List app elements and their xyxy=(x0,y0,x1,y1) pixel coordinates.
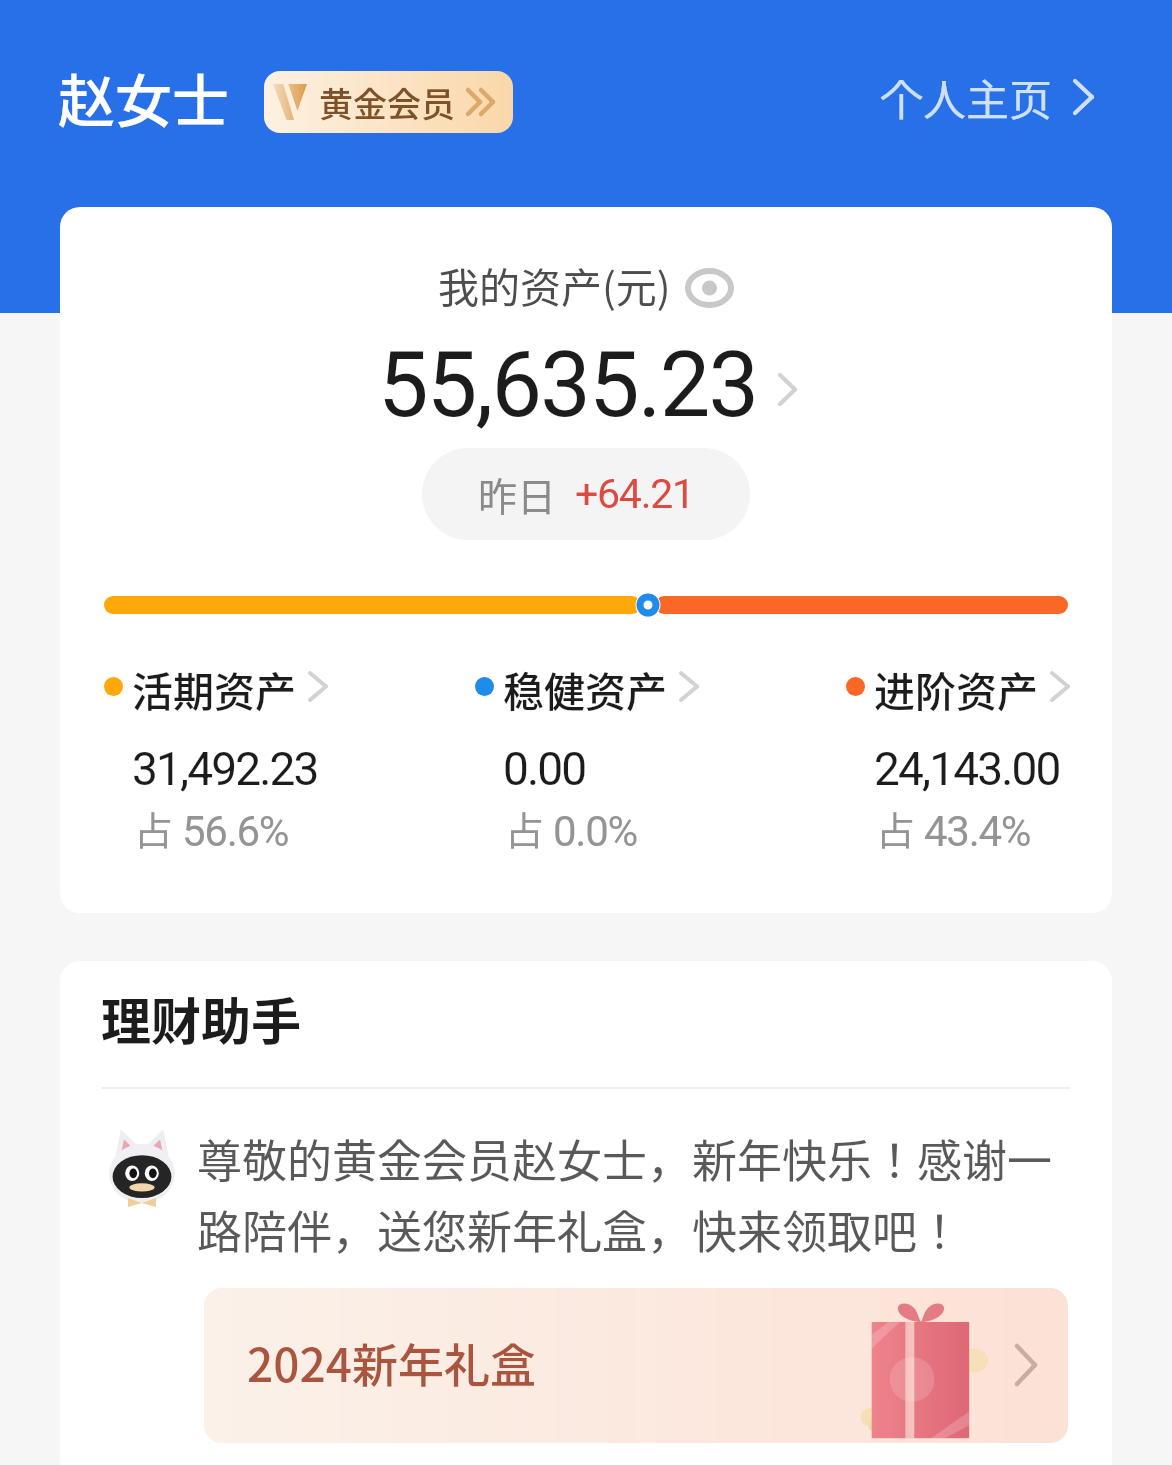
button[interactable]: 个人主页 xyxy=(880,66,1092,128)
staticText: 个人主页 xyxy=(880,66,1052,128)
staticText: 0.0% xyxy=(553,807,638,856)
staticText: 31,492.23 xyxy=(132,742,318,796)
staticText: +64.21 xyxy=(575,470,694,518)
staticText: 24,143.00 xyxy=(874,742,1060,796)
staticText: 进阶资产 xyxy=(874,659,1038,718)
staticText: 占 xyxy=(505,800,545,856)
staticText: 56.6% xyxy=(182,807,289,856)
staticText: 0.00 xyxy=(503,742,586,796)
staticText: 尊敬的黄金会员赵女士，新年快乐！感谢一路陪伴，送您新年礼盒，快来领取吧！ xyxy=(197,1126,1077,1262)
staticText: 理财助手 xyxy=(101,982,301,1054)
staticText: 赵女士 xyxy=(58,56,229,139)
staticText: 黄金会员 xyxy=(319,78,455,127)
staticText: 43.4% xyxy=(924,807,1031,856)
button[interactable]: 黄金会员 xyxy=(264,71,513,133)
staticText: 稳健资产 xyxy=(503,659,667,718)
button[interactable]: 昨日 xyxy=(422,448,750,540)
button[interactable]: Hide balance xyxy=(684,268,734,308)
button[interactable]: 稳健资产 xyxy=(475,657,697,856)
staticText: 我的资产(元) xyxy=(438,255,671,314)
button[interactable]: 进阶资产 xyxy=(846,657,1068,856)
staticText: 占 xyxy=(876,800,916,856)
staticText: 55,635.23 xyxy=(378,333,758,438)
staticText: 占 xyxy=(134,800,174,856)
button[interactable]: 2024新年礼盒 xyxy=(204,1288,1068,1443)
staticText: 昨日 xyxy=(478,466,557,522)
button[interactable]: 活期资产 xyxy=(104,657,326,856)
staticText: 2024新年礼盒 xyxy=(247,1329,536,1396)
button[interactable]: 55,635.23 xyxy=(60,333,1112,438)
staticText: 活期资产 xyxy=(132,659,296,718)
